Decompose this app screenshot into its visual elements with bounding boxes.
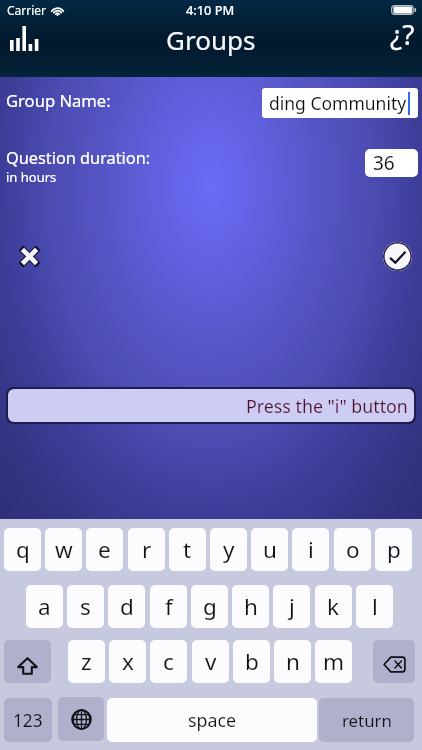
button[interactable]: Confirm (383, 242, 412, 271)
staticText: k (327, 591, 340, 622)
button[interactable]: b (233, 640, 270, 683)
button[interactable]: y (210, 528, 247, 571)
button[interactable]: 123 (4, 698, 52, 742)
button[interactable]: Statistics (5, 19, 43, 57)
staticText: a (38, 591, 51, 622)
button[interactable]: a (26, 585, 63, 628)
staticText: 123 (13, 709, 43, 732)
staticText: t (183, 534, 192, 565)
staticText: p (387, 534, 401, 565)
staticText: f (165, 591, 173, 622)
button[interactable]: i (292, 528, 329, 571)
staticText: v (205, 646, 217, 677)
staticText: u (263, 534, 277, 565)
button[interactable]: p (375, 528, 412, 571)
button[interactable]: Press the "i" button (8, 389, 414, 422)
button[interactable]: space (107, 698, 317, 742)
staticText: in hours (6, 168, 57, 186)
staticText: h (244, 591, 258, 622)
staticText: 4:10 PM (186, 1, 235, 18)
staticText: Press the "i" button (246, 394, 408, 418)
staticText: ding Community (269, 91, 407, 115)
button[interactable]: o (334, 528, 371, 571)
button[interactable]: Help (384, 15, 420, 51)
button[interactable]: h (232, 585, 269, 628)
button[interactable]: c (150, 640, 187, 683)
staticText: e (98, 534, 111, 565)
staticText: d (120, 591, 134, 622)
button[interactable]: t (169, 528, 206, 571)
button[interactable]: Backspace (373, 640, 415, 683)
button[interactable]: q (4, 528, 41, 571)
button[interactable]: v (192, 640, 229, 683)
button[interactable]: g (191, 585, 228, 628)
staticText: y (223, 534, 235, 565)
button[interactable]: j (273, 585, 310, 628)
staticText: o (346, 534, 360, 565)
staticText: b (245, 646, 259, 677)
button[interactable]: e (86, 528, 123, 571)
staticText: 36 (373, 150, 395, 176)
staticText: z (81, 646, 92, 677)
staticText: Carrier (7, 2, 47, 18)
button[interactable]: x (109, 640, 146, 683)
staticText: return (342, 709, 392, 732)
button[interactable]: w (45, 528, 82, 571)
button[interactable]: Cancel (14, 241, 45, 272)
staticText: m (323, 646, 345, 677)
staticText: n (286, 646, 300, 677)
staticText: q (16, 534, 30, 565)
staticText: r (142, 534, 152, 565)
button[interactable]: k (315, 585, 352, 628)
staticText: s (80, 591, 91, 622)
staticText: x (122, 646, 134, 677)
button[interactable]: l (356, 585, 393, 628)
staticText: Groups (166, 22, 256, 57)
button[interactable]: 36 (365, 149, 418, 177)
staticText: Group Name: (6, 89, 111, 112)
button[interactable]: m (315, 640, 352, 683)
staticText: g (203, 591, 217, 622)
button[interactable]: u (251, 528, 288, 571)
button[interactable]: ding Community (262, 88, 418, 118)
button[interactable]: Shift (4, 640, 51, 683)
button[interactable]: n (274, 640, 311, 683)
staticText: l (372, 591, 378, 622)
button[interactable]: f (150, 585, 187, 628)
staticText: ¿? (390, 15, 415, 51)
staticText: w (55, 534, 73, 565)
staticText: space (188, 708, 237, 732)
button[interactable]: Change keyboard (58, 697, 104, 741)
button[interactable]: d (108, 585, 145, 628)
staticText: i (308, 534, 314, 565)
button[interactable]: r (128, 528, 165, 571)
staticText: Question duration: (6, 147, 151, 169)
staticText: j (289, 591, 295, 622)
button[interactable]: s (67, 585, 104, 628)
button[interactable]: return (319, 698, 414, 742)
button[interactable]: z (68, 640, 105, 683)
staticText: c (163, 646, 174, 677)
